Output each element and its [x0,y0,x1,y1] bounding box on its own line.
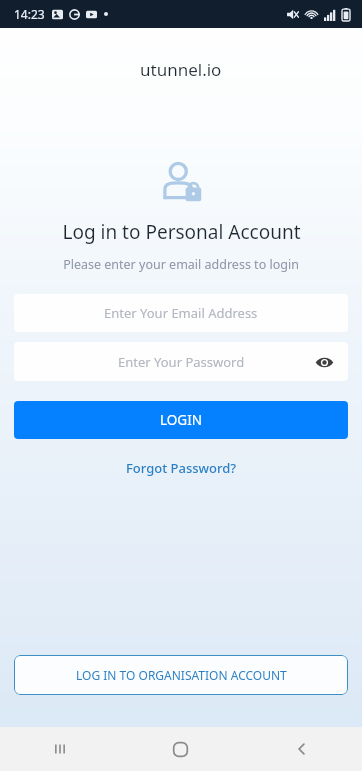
staticText: Please enter your email address to login [63,256,299,273]
staticText: Forgot Password? [126,459,237,477]
button[interactable]: LOG IN TO ORGANISATION ACCOUNT [14,655,348,695]
staticText: Enter Your Password [118,353,245,371]
button[interactable]: Home [120,727,241,771]
staticText: Enter Your Email Address [104,304,258,322]
button[interactable]: Forgot Password? [116,455,247,481]
button[interactable]: Back [241,727,362,771]
button[interactable]: Show password [308,346,340,378]
staticText: Log in to Personal Account [62,219,301,245]
button[interactable]: Enter Your Password [14,342,348,381]
button[interactable]: Recents [0,727,120,771]
button[interactable]: LOGIN [14,401,348,439]
button[interactable]: Enter Your Email Address [14,294,348,332]
staticText: utunnel.io [140,58,222,81]
staticText: LOG IN TO ORGANISATION ACCOUNT [76,667,287,683]
staticText: LOGIN [160,411,203,429]
staticText: 14:23 [14,6,45,22]
